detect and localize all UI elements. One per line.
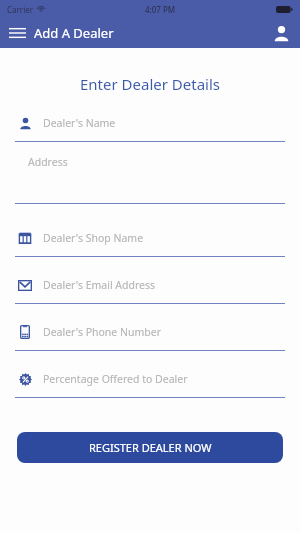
- staticText: Carrier: [7, 4, 34, 15]
- staticText: Percentage Offered to Dealer: [43, 372, 188, 386]
- button[interactable]: REGISTER DEALER NOW: [17, 432, 283, 463]
- staticText: REGISTER DEALER NOW: [89, 440, 212, 455]
- button[interactable]: Open navigation menu: [0, 18, 34, 48]
- staticText: Dealer's Shop Name: [43, 231, 144, 245]
- button[interactable]: Dealer's Phone Number: [15, 325, 285, 351]
- button[interactable]: Percentage Offered to Dealer: [15, 372, 285, 398]
- staticText: Address: [28, 155, 68, 169]
- staticText: Dealer's Phone Number: [43, 325, 162, 339]
- staticText: Add A Dealer: [34, 24, 114, 42]
- staticText: 4:07 PM: [145, 4, 176, 15]
- button[interactable]: Address: [15, 155, 285, 204]
- button[interactable]: Dealer's Shop Name: [15, 231, 285, 257]
- staticText: Dealer's Name: [43, 116, 116, 130]
- button[interactable]: Dealer's Email Address: [15, 278, 285, 304]
- button[interactable]: Dealer's Name: [15, 116, 285, 142]
- staticText: Dealer's Email Address: [43, 278, 156, 292]
- staticText: Enter Dealer Details: [0, 74, 300, 94]
- button[interactable]: Account: [262, 18, 300, 48]
